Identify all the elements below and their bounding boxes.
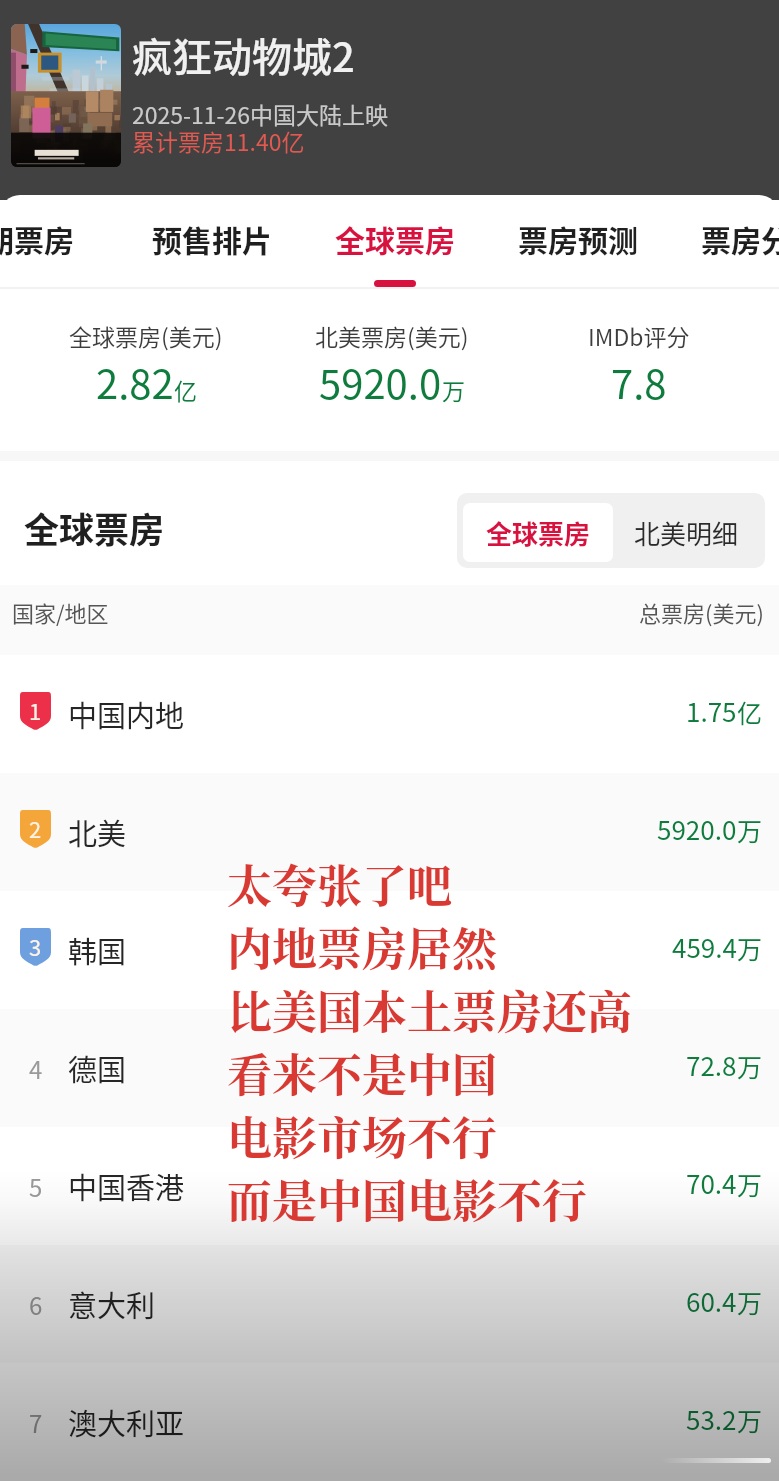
staticText: 2 <box>29 812 42 844</box>
staticText: 全球票房 <box>335 217 455 260</box>
staticText: 北美 <box>68 811 127 853</box>
staticText: 全球票房 <box>486 514 591 552</box>
staticText: 万 <box>737 1284 763 1320</box>
staticText: 票房分析 <box>701 217 779 260</box>
staticText: 72.8 <box>686 1046 737 1084</box>
staticText: 7 <box>29 1405 43 1440</box>
staticText: 万 <box>737 1166 763 1202</box>
staticText: 票房预测 <box>518 217 638 260</box>
staticText: 全球票房(美元) <box>69 319 223 352</box>
staticText: 太夸张了吧 <box>227 851 453 916</box>
button[interactable]: 预售排片 <box>120 195 303 297</box>
staticText: 澳大利亚 <box>68 1401 185 1443</box>
button[interactable]: 2 <box>0 773 779 891</box>
button[interactable]: 3 <box>0 891 779 1009</box>
staticText: 万 <box>737 930 763 966</box>
button[interactable]: 票房预测 <box>486 195 669 297</box>
staticText: 459.4 <box>672 928 737 966</box>
button[interactable]: 全球票房 <box>303 195 486 297</box>
button[interactable]: 全球票房 <box>463 503 613 562</box>
staticText: 4 <box>29 1051 43 1086</box>
staticText: 万 <box>737 1402 763 1438</box>
staticText: 1 <box>29 694 42 726</box>
staticText: 53.2 <box>686 1400 737 1438</box>
button[interactable]: 期票房 <box>0 195 120 297</box>
staticText: 6 <box>29 1287 43 1322</box>
staticText: 而是中国电影不行 <box>227 1166 588 1231</box>
staticText: 亿 <box>737 694 763 730</box>
staticText: 5920.0 <box>657 810 737 848</box>
button[interactable]: 1 <box>0 655 779 773</box>
staticText: 中国内地 <box>68 693 185 735</box>
staticText: 看来不是中国 <box>227 1040 498 1105</box>
staticText: 全球票房 <box>24 502 165 553</box>
button[interactable]: 6 <box>0 1245 779 1363</box>
button[interactable]: 北美明细 <box>613 503 759 562</box>
staticText: 内地票房居然 <box>227 914 498 979</box>
staticText: 比美国本土票房还高 <box>227 977 633 1042</box>
staticText: 累计票房11.40亿 <box>132 124 305 157</box>
button[interactable]: 4 <box>0 1009 779 1127</box>
staticText: 2.82 <box>96 353 174 411</box>
staticText: 万 <box>442 373 465 406</box>
staticText: 北美票房(美元) <box>315 319 469 352</box>
staticText: 7.8 <box>611 353 667 411</box>
button[interactable]: 票房分析 <box>669 195 779 297</box>
staticText: 70.4 <box>686 1164 737 1202</box>
staticText: 中国香港 <box>68 1165 185 1207</box>
staticText: 亿 <box>174 373 197 406</box>
staticText: 万 <box>737 1048 763 1084</box>
staticText: 预售排片 <box>152 217 272 260</box>
staticText: 疯狂动物城2 <box>132 26 355 84</box>
staticText: 万 <box>737 812 763 848</box>
staticText: 5920.0 <box>319 353 442 411</box>
staticText: 国家/地区 <box>12 596 109 628</box>
staticText: 电影市场不行 <box>227 1103 498 1168</box>
button[interactable]: 7 <box>0 1363 779 1481</box>
staticText: 2025-11-26中国大陆上映 <box>132 97 389 130</box>
staticText: 总票房(美元) <box>639 596 764 628</box>
staticText: 北美明细 <box>634 514 739 552</box>
staticText: 期票房 <box>0 217 74 260</box>
staticText: 意大利 <box>68 1283 156 1325</box>
staticText: 60.4 <box>686 1282 737 1320</box>
staticText: 1.75 <box>686 692 737 730</box>
staticText: 德国 <box>68 1047 127 1089</box>
staticText: 韩国 <box>68 929 127 971</box>
staticText: 3 <box>29 930 42 962</box>
staticText: 5 <box>29 1169 43 1204</box>
button[interactable]: 5 <box>0 1127 779 1245</box>
staticText: IMDb评分 <box>588 319 690 352</box>
